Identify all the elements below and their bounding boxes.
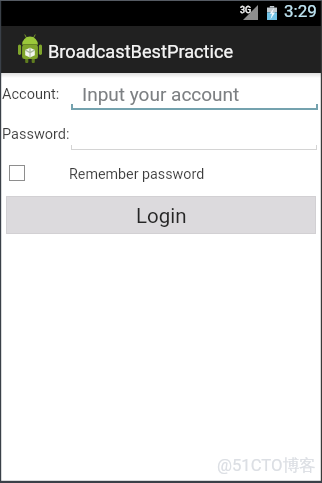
staticText: 3:29 (284, 1, 317, 21)
staticText: Remember password (69, 166, 205, 183)
other: App icon (18, 33, 42, 63)
staticText: Login (136, 204, 187, 228)
button[interactable] (71, 120, 317, 150)
staticText: @51CTO博客 (217, 455, 316, 476)
staticText: Account: (2, 86, 60, 103)
staticText: BroadcastBestPractice (48, 41, 234, 62)
staticText: Input your account (82, 83, 240, 105)
button[interactable]: Input your account (71, 79, 318, 111)
staticText: 3G (240, 5, 252, 16)
button[interactable]: Remember password (0, 158, 322, 188)
staticText: Password: (2, 126, 70, 143)
button[interactable]: Login (6, 196, 316, 234)
